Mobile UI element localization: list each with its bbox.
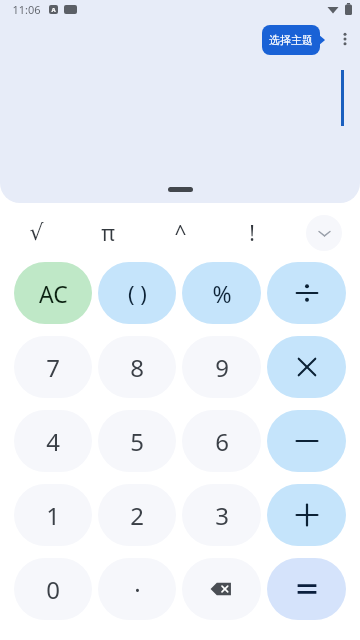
button[interactable]: Equals (267, 558, 346, 620)
button[interactable]: Subtract (267, 410, 346, 472)
button[interactable]: 0 (14, 558, 92, 620)
button[interactable]: ^ (144, 209, 216, 257)
button[interactable]: Backspace (182, 558, 261, 620)
button[interactable]: π (72, 209, 144, 257)
button[interactable]: Multiply (267, 336, 346, 398)
staticText: 1 (46, 499, 60, 532)
button[interactable]: · (98, 558, 176, 620)
staticText: ^ (174, 219, 187, 248)
button[interactable]: Add (267, 484, 346, 546)
staticText: 选择主题 (269, 33, 313, 47)
button[interactable]: √ (0, 209, 72, 257)
button[interactable]: Expand (306, 215, 342, 251)
staticText: · (134, 573, 141, 606)
button[interactable]: 8 (98, 336, 176, 398)
button[interactable]: 选择主题 (262, 25, 326, 55)
staticText: 0 (46, 573, 60, 606)
staticText: A (51, 6, 56, 14)
button[interactable]: 2 (98, 484, 176, 546)
button[interactable]: ! (216, 209, 288, 257)
staticText: 9 (215, 351, 229, 384)
staticText: ( ) (128, 278, 147, 308)
button[interactable]: AC (14, 262, 92, 324)
button[interactable]: 4 (14, 410, 92, 472)
staticText: √ (29, 220, 44, 246)
button[interactable]: Drag handle (168, 187, 193, 192)
staticText: AC (39, 278, 68, 309)
button[interactable]: ( ) (98, 262, 176, 324)
button[interactable]: 6 (182, 410, 261, 472)
staticText: 8 (130, 351, 144, 384)
button[interactable]: 9 (182, 336, 261, 398)
button[interactable]: More options (330, 24, 360, 54)
button[interactable]: 1 (14, 484, 92, 546)
staticText: 6 (215, 425, 229, 458)
staticText: ! (249, 219, 255, 248)
staticText: 2 (130, 499, 144, 532)
staticText: 4 (46, 425, 60, 458)
button[interactable]: % (182, 262, 261, 324)
button[interactable]: 7 (14, 336, 92, 398)
staticText: 11:06 (12, 2, 41, 17)
button[interactable]: Divide (267, 262, 346, 324)
staticText: 3 (215, 499, 229, 532)
button[interactable]: 3 (182, 484, 261, 546)
staticText: π (101, 219, 115, 248)
button[interactable]: 5 (98, 410, 176, 472)
staticText: 7 (46, 351, 60, 384)
staticText: 5 (130, 425, 144, 458)
staticText: % (212, 278, 232, 309)
